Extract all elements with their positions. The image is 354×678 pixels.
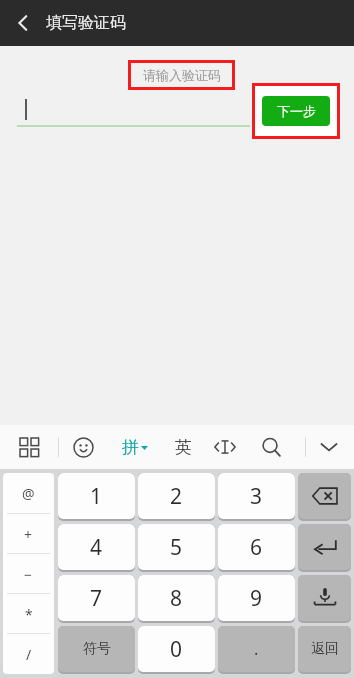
button[interactable]: 6 [218, 524, 295, 570]
staticText: 5 [170, 533, 183, 562]
other: Voice input [298, 575, 351, 623]
other: Enter [298, 524, 351, 572]
button[interactable] [298, 473, 351, 519]
staticText: 1 [90, 482, 103, 511]
staticText: 英 [175, 437, 192, 458]
staticText: @ [22, 484, 35, 503]
staticText: 符号 [83, 640, 111, 658]
staticText: − [24, 565, 33, 584]
button[interactable]: @ [3, 473, 54, 514]
staticText: 填写验证码 [46, 13, 126, 33]
button[interactable] [298, 575, 351, 621]
staticText: 3 [250, 482, 263, 511]
button[interactable]: 8 [138, 575, 215, 621]
button[interactable]: 返回 [298, 626, 351, 672]
button[interactable]: . [218, 626, 295, 672]
button[interactable]: 5 [138, 524, 215, 570]
button[interactable]: Back [4, 4, 42, 42]
button[interactable]: 英 [168, 432, 198, 462]
staticText: 6 [250, 533, 263, 562]
button[interactable] [298, 524, 351, 570]
button[interactable]: 2 [138, 473, 215, 519]
staticText: / [26, 645, 32, 664]
button[interactable]: Emoji [68, 432, 98, 462]
button[interactable]: + [3, 514, 54, 554]
staticText: 4 [90, 533, 103, 562]
button[interactable]: Move cursor [210, 432, 240, 462]
staticText: 7 [90, 584, 103, 613]
button[interactable]: Search [256, 432, 286, 462]
staticText: 请输入验证码 [143, 67, 221, 83]
button[interactable]: 1 [58, 473, 135, 519]
button[interactable]: 下一步 [262, 96, 330, 126]
staticText: 9 [250, 584, 263, 613]
staticText: 返回 [311, 640, 339, 658]
button[interactable]: 0 [138, 626, 215, 672]
staticText: 拼 [122, 437, 139, 458]
button[interactable]: Hide keyboard [314, 432, 344, 462]
button[interactable]: 4 [58, 524, 135, 570]
button[interactable]: Verification code input [17, 94, 250, 127]
button[interactable]: * [3, 594, 54, 634]
button[interactable]: Keyboard layouts [14, 432, 44, 462]
other: Backspace [298, 473, 351, 521]
staticText: * [25, 605, 33, 624]
staticText: 2 [170, 482, 183, 511]
button[interactable]: 9 [218, 575, 295, 621]
staticText: + [24, 525, 33, 544]
staticText: 下一步 [277, 103, 316, 119]
button[interactable]: 3 [218, 473, 295, 519]
staticText: . [254, 638, 259, 660]
staticText: 0 [170, 635, 183, 664]
staticText: 8 [170, 584, 183, 613]
button[interactable]: 符号 [58, 626, 135, 672]
button[interactable]: 7 [58, 575, 135, 621]
button[interactable]: − [3, 554, 54, 594]
button[interactable]: 拼 [122, 437, 148, 458]
button[interactable]: / [3, 634, 54, 674]
